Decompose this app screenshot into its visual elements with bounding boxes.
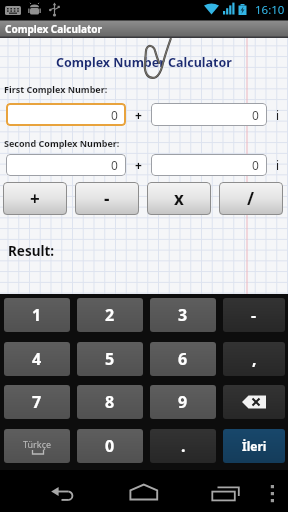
button[interactable] <box>204 472 248 510</box>
staticText: 9 <box>178 391 188 413</box>
staticText: - <box>251 304 257 326</box>
staticText: 2 <box>105 304 115 326</box>
button[interactable]: - <box>223 298 285 332</box>
button[interactable]: 7 <box>4 385 70 419</box>
staticText: Complex Calculator <box>5 22 102 36</box>
staticText: , <box>252 348 257 370</box>
staticText: 6 <box>178 348 188 370</box>
button[interactable]: Türkçe <box>4 429 70 463</box>
button[interactable]: 0 <box>6 154 126 176</box>
button[interactable]: 0 <box>77 429 143 463</box>
staticText: 0 <box>111 157 118 173</box>
staticText: 0 <box>105 435 115 457</box>
button[interactable]: 1 <box>4 298 70 332</box>
staticText: 3 <box>178 304 188 326</box>
staticText: 1 <box>32 304 42 326</box>
staticText: 16:10 <box>255 2 285 18</box>
button[interactable]: + <box>3 182 67 215</box>
button[interactable] <box>262 472 284 510</box>
button[interactable]: . <box>150 429 216 463</box>
button[interactable] <box>223 385 285 419</box>
staticText: 0 <box>111 107 118 123</box>
button[interactable]: İleri <box>223 429 285 463</box>
staticText: i <box>276 157 280 173</box>
button[interactable]: - <box>75 182 139 215</box>
staticText: 5 <box>105 348 115 370</box>
button[interactable]: 4 <box>4 342 70 376</box>
staticText: Result: <box>8 242 55 260</box>
staticText: / <box>247 187 255 210</box>
button[interactable]: 2 <box>77 298 143 332</box>
staticText: Türkçe <box>23 438 52 450</box>
staticText: x <box>174 187 184 210</box>
staticText: + <box>135 157 142 173</box>
staticText: Second Complex Number: <box>4 137 120 149</box>
staticText: . <box>181 435 186 457</box>
staticText: + <box>135 107 142 123</box>
button[interactable] <box>122 472 166 510</box>
staticText: i <box>276 107 280 123</box>
button[interactable]: / <box>219 182 283 215</box>
staticText: 4 <box>32 348 42 370</box>
button[interactable]: 8 <box>77 385 143 419</box>
button[interactable]: 6 <box>150 342 216 376</box>
button[interactable] <box>40 472 84 510</box>
button[interactable]: x <box>147 182 211 215</box>
staticText: Complex Number Calculator <box>56 54 232 71</box>
staticText: + <box>30 187 40 210</box>
staticText: 8 <box>105 391 115 413</box>
staticText: 7 <box>32 391 42 413</box>
staticText: 0 <box>252 107 259 123</box>
button[interactable]: 0 <box>151 154 267 176</box>
button[interactable]: 3 <box>150 298 216 332</box>
button[interactable]: 5 <box>77 342 143 376</box>
staticText: İleri <box>242 438 267 454</box>
staticText: 0 <box>252 157 259 173</box>
button[interactable]: 0 <box>6 103 126 126</box>
staticText: First Complex Number: <box>4 83 108 95</box>
staticText: - <box>104 187 110 210</box>
button[interactable]: , <box>223 342 285 376</box>
button[interactable]: 9 <box>150 385 216 419</box>
button[interactable]: 0 <box>151 103 267 126</box>
